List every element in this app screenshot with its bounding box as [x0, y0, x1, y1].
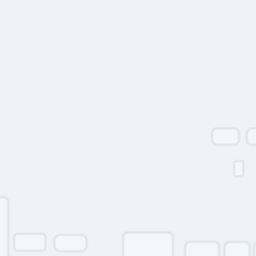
button[interactable]: Tool five [224, 242, 250, 256]
button[interactable]: Tool three [123, 232, 173, 256]
button[interactable]: Side panel [0, 197, 8, 256]
button[interactable]: Tool one [14, 234, 45, 251]
button[interactable]: Tool two [54, 235, 87, 251]
button[interactable]: Option [212, 128, 239, 145]
button[interactable]: More options [247, 128, 256, 145]
button[interactable]: Tool six [254, 242, 256, 256]
button[interactable]: Handle [234, 161, 243, 176]
button[interactable]: Tool four [185, 242, 219, 256]
